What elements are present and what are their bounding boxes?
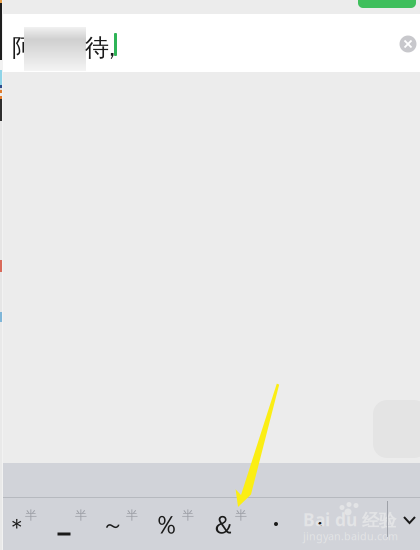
staticText: 半 [25,508,37,523]
button[interactable]: ％ [153,512,179,538]
button[interactable]: Send [358,0,416,8]
button[interactable]: Middle dot [266,512,286,536]
staticText: 阿 [12,33,36,62]
button[interactable]: Hide keyboard [395,508,420,534]
staticText: ～ [101,511,124,539]
staticText: ， [100,33,124,62]
staticText: 半 [235,508,247,523]
staticText: Bai du 经验 [303,508,396,531]
staticText: ％ [153,509,178,540]
button[interactable]: ＆ [211,512,235,538]
staticText: ＆ [210,509,235,540]
staticText: jingyan.baidu.com [303,529,398,543]
staticText: 待 [85,33,109,62]
button[interactable]: Middle dot [310,512,330,536]
staticText: 半 [126,508,138,523]
staticText: 半 [75,508,87,523]
button[interactable]: ＊ [6,514,28,540]
staticText: ＊ [5,513,28,541]
button[interactable]: Dash [52,521,76,547]
button[interactable]: Clear text [393,29,420,59]
button[interactable]: ～ [102,512,124,538]
staticText: 半 [182,508,194,523]
